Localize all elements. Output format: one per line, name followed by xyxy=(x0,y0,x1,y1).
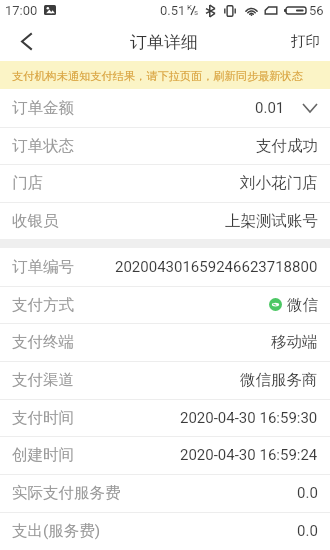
staticText: 56 xyxy=(309,3,324,18)
staticText: 17:00 xyxy=(5,3,38,18)
button[interactable]: 支出(服务费) xyxy=(0,512,330,550)
button[interactable]: 创建时间 xyxy=(0,436,330,474)
button[interactable]: 支付方式 xyxy=(0,286,330,323)
staticText: 收银员 xyxy=(12,211,59,231)
button[interactable]: 门店 xyxy=(0,164,330,202)
staticText: 订单状态 xyxy=(12,136,74,156)
staticText: 202004301659246623718800 xyxy=(115,258,318,276)
button[interactable]: Back xyxy=(0,22,50,61)
staticText: 订单详细 xyxy=(130,32,198,53)
button[interactable]: 实际支付服务费 xyxy=(0,474,330,512)
staticText: 门店 xyxy=(12,173,43,193)
staticText: 支付时间 xyxy=(12,408,74,428)
staticText: 实际支付服务费 xyxy=(12,483,121,503)
staticText: 支付渠道 xyxy=(12,370,74,390)
button[interactable]: 订单状态 xyxy=(0,127,330,164)
staticText: 支出(服务费) xyxy=(12,521,101,541)
staticText: 微信服务商 xyxy=(240,370,318,390)
staticText: 0.0 xyxy=(297,522,318,540)
staticText: 支付机构未通知支付结果，请下拉页面，刷新同步最新状态 xyxy=(12,69,303,83)
staticText: 0.51 xyxy=(160,3,186,18)
staticText: 订单编号 xyxy=(12,257,74,277)
button[interactable]: 收银员 xyxy=(0,202,330,239)
staticText: 微信 xyxy=(287,295,318,315)
staticText: 上架测试账号 xyxy=(225,211,318,231)
staticText: 0.0 xyxy=(297,484,318,502)
button[interactable]: 订单编号 xyxy=(0,248,330,286)
staticText: s xyxy=(194,8,199,17)
button[interactable]: 支付终端 xyxy=(0,323,330,361)
staticText: 0.01 xyxy=(255,99,285,117)
staticText: 移动端 xyxy=(271,332,318,352)
button[interactable]: 订单金额 xyxy=(0,89,330,127)
staticText: 刘小花门店 xyxy=(240,173,318,193)
button[interactable]: 支付时间 xyxy=(0,399,330,436)
staticText: 支付方式 xyxy=(12,295,74,315)
button[interactable]: 打印 xyxy=(277,22,330,61)
staticText: 订单金额 xyxy=(12,98,74,118)
button[interactable]: 支付渠道 xyxy=(0,361,330,399)
staticText: 打印 xyxy=(291,32,320,50)
staticText: 支付成功 xyxy=(256,136,318,156)
staticText: 2020-04-30 16:59:24 xyxy=(180,446,318,464)
staticText: 支付终端 xyxy=(12,332,74,352)
staticText: K xyxy=(187,3,193,12)
staticText: 2020-04-30 16:59:30 xyxy=(180,409,318,427)
staticText: 创建时间 xyxy=(12,445,74,465)
